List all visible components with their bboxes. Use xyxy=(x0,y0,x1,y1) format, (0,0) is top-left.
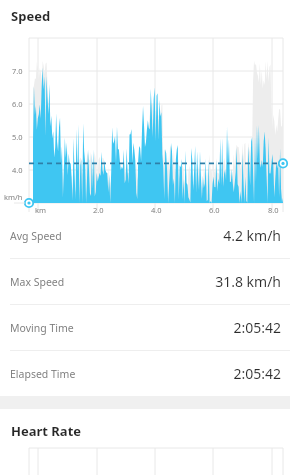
staticText: 6.0 xyxy=(209,205,220,213)
staticText: Moving Time xyxy=(10,321,74,335)
staticText: Avg Speed xyxy=(10,229,62,243)
staticText: 6.0 xyxy=(12,99,23,109)
staticText: 2:05:42 xyxy=(233,364,281,383)
button[interactable]: Avg Speed xyxy=(0,213,290,258)
staticText: 31.8 km/h xyxy=(215,272,281,291)
staticText: km/h xyxy=(4,192,23,202)
staticText: 8.0 xyxy=(268,205,279,213)
staticText: 4.2 km/h xyxy=(223,226,281,245)
button[interactable]: Elapsed Time xyxy=(0,351,290,396)
staticText: Heart Rate xyxy=(11,422,82,440)
staticText: 5.0 xyxy=(12,132,23,142)
staticText: 7.0 xyxy=(12,66,23,76)
staticText: km xyxy=(35,205,47,213)
staticText: Speed xyxy=(11,7,51,25)
staticText: 4.0 xyxy=(151,205,162,213)
staticText: 2.0 xyxy=(93,205,104,213)
button[interactable]: Moving Time xyxy=(0,305,290,350)
staticText: 4.0 xyxy=(12,165,23,175)
staticText: Max Speed xyxy=(10,275,65,289)
staticText: Elapsed Time xyxy=(10,367,76,381)
button[interactable]: Max Speed xyxy=(0,259,290,304)
staticText: 2:05:42 xyxy=(233,318,281,337)
